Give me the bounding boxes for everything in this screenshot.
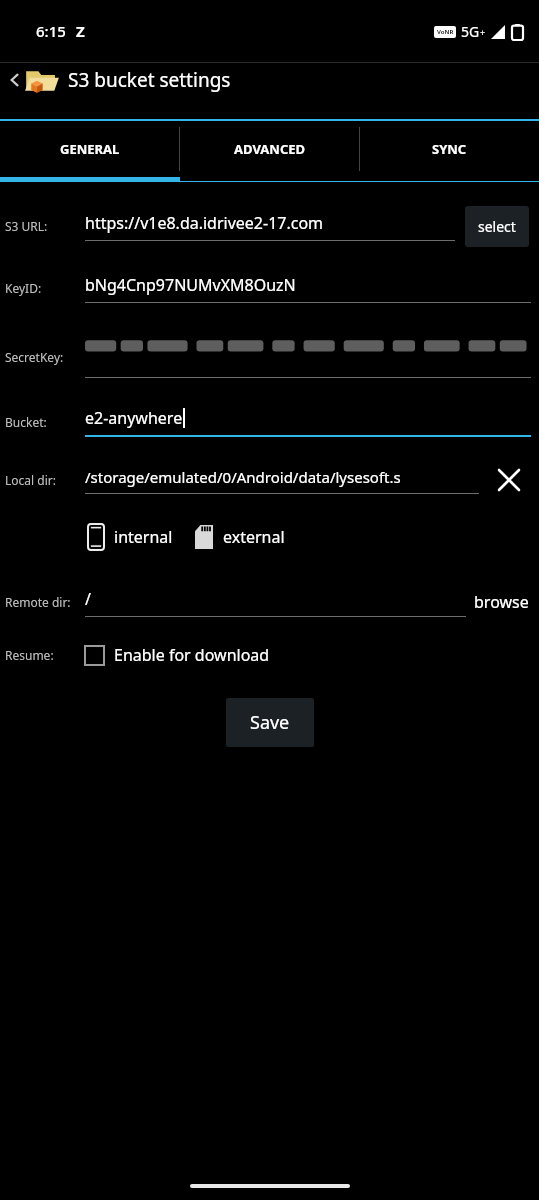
staticText: 5G xyxy=(461,22,480,41)
staticText: KeyID: xyxy=(5,280,42,296)
button[interactable]: Save xyxy=(226,698,314,747)
staticText: bNg4Cnp97NUMvXM8OuzN xyxy=(85,274,296,296)
button[interactable]: browse xyxy=(466,591,539,613)
button[interactable]: internal xyxy=(88,520,173,554)
staticText: Local dir: xyxy=(5,472,56,488)
staticText: select xyxy=(478,217,516,236)
staticText: GENERAL xyxy=(60,140,120,158)
staticText: Enable for download xyxy=(114,644,270,666)
staticText: Remote dir: xyxy=(5,594,71,610)
staticText: VoNR xyxy=(437,28,454,36)
button[interactable]: Back to S3 bucket settings xyxy=(4,62,539,98)
staticText: SecretKey: xyxy=(5,349,64,365)
staticText: 6:15 xyxy=(36,21,66,41)
staticText: Z xyxy=(76,21,85,41)
staticText: ADVANCED xyxy=(234,140,306,158)
staticText: S3 bucket settings xyxy=(68,67,231,93)
staticText: Bucket: xyxy=(5,414,47,430)
staticText: S3 URL: xyxy=(5,218,48,234)
staticText: / xyxy=(85,588,91,610)
staticText: Resume: xyxy=(5,647,54,663)
button[interactable]: Clear local directory xyxy=(491,462,527,498)
staticText: e2-anywhere xyxy=(85,407,183,429)
button[interactable]: SYNC xyxy=(360,121,539,177)
button[interactable]: select xyxy=(465,206,529,247)
staticText: https://v1e8.da.idrivee2-17.com xyxy=(85,212,324,234)
staticText: /storage/emulated/0/Android/data/lysesof… xyxy=(85,467,401,487)
staticText: browse xyxy=(474,591,529,613)
staticText: SYNC xyxy=(432,140,467,158)
staticText: external xyxy=(223,526,285,548)
staticText: internal xyxy=(114,526,173,548)
button[interactable]: Enable for download xyxy=(85,641,270,669)
button[interactable]: external xyxy=(195,521,285,553)
button[interactable]: GENERAL xyxy=(0,121,179,177)
staticText: Save xyxy=(250,710,290,735)
button[interactable]: ADVANCED xyxy=(180,121,359,177)
staticText: + xyxy=(480,26,486,38)
